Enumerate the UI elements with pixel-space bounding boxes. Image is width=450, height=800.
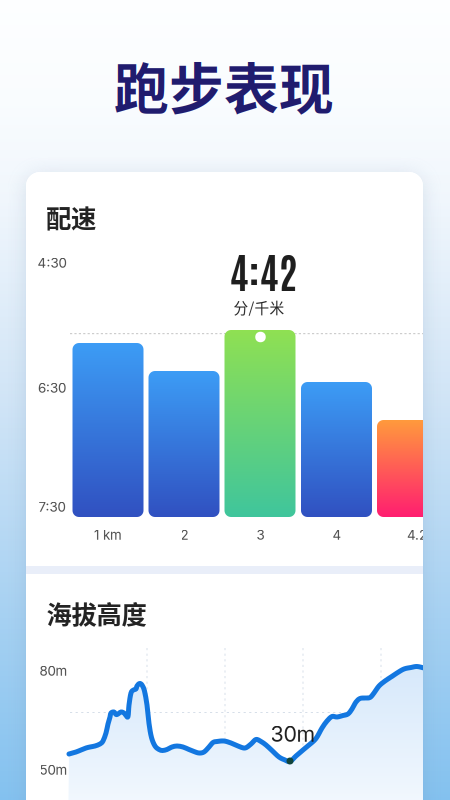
staticText: 30m [270, 721, 315, 747]
staticText: 6:30 [38, 380, 66, 396]
staticText: 7:30 [38, 499, 65, 515]
staticText: 2 [180, 527, 188, 543]
staticText: 50m [39, 762, 67, 778]
staticText: 跑步表现 [114, 45, 334, 125]
staticText: 配速 [46, 199, 96, 235]
staticText: 4.2 [407, 527, 427, 543]
staticText: 3 [256, 527, 264, 543]
staticText: 分/千米 [233, 296, 284, 318]
staticText: 4:42 [229, 243, 297, 297]
staticText: 4:30 [37, 255, 66, 271]
staticText: 4 [332, 527, 341, 543]
staticText: 1 km [94, 527, 122, 543]
staticText: 海拔高度 [46, 595, 146, 631]
staticText: 80m [39, 663, 67, 679]
